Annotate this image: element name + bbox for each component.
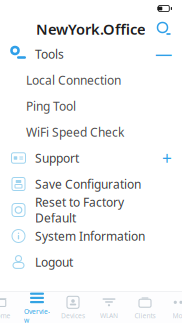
staticText: Reset to Factory Default [35,194,124,226]
staticText: Save Configuration [35,176,141,192]
staticText: More [172,311,182,320]
button[interactable]: Tools [0,41,182,67]
button[interactable]: Reset to Factory Default [0,197,182,223]
button[interactable]: Overview [23,293,51,321]
button[interactable]: Support [0,145,182,171]
staticText: Clients [134,311,155,320]
button[interactable]: Clients [131,293,159,321]
staticText: Support [35,150,79,166]
staticText: System Information [35,228,145,244]
staticText: + [162,146,172,169]
button[interactable]: More [167,293,182,321]
button[interactable]: WLAN [95,293,123,321]
button[interactable]: Search [152,17,176,41]
staticText: Ping Tool [26,98,76,114]
staticText: NewYork.Office [36,19,146,39]
staticText: Tools [35,46,64,62]
staticText: Overview [24,307,50,323]
button[interactable]: Logout [0,249,182,275]
button[interactable]: Ping Tool [0,93,182,119]
staticText: Devices [61,311,85,320]
button[interactable]: Local Connection [0,67,182,93]
staticText: Local Connection [26,72,121,88]
button[interactable]: Home [0,293,15,321]
button[interactable]: Save Configuration [0,171,182,197]
staticText: WLAN [100,311,118,320]
staticText: Logout [35,254,73,270]
button[interactable]: Devices [59,293,87,321]
button[interactable]: System Information [0,223,182,249]
staticText: WiFi Speed Check [26,124,124,140]
button[interactable]: WiFi Speed Check [0,119,182,145]
staticText: Home [0,311,10,320]
staticText: — [155,42,172,65]
